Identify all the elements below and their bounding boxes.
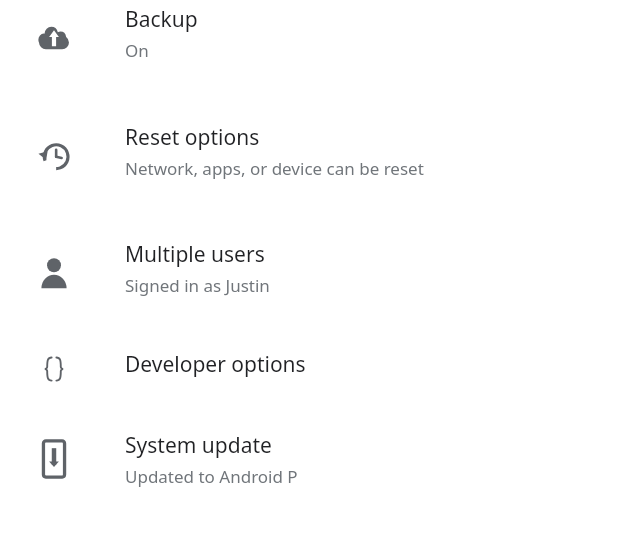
other: Developer options [37,352,71,386]
staticText: On [125,39,149,62]
other: Reset options [36,138,72,174]
button[interactable]: Multiple users [0,235,642,340]
staticText: Updated to Android P [125,465,298,488]
staticText: Developer options [125,350,306,379]
button[interactable]: Backup [0,0,642,118]
button[interactable]: System update [0,427,642,558]
other: Multiple users [37,255,71,289]
staticText: Backup [125,5,198,34]
staticText: Multiple users [125,240,265,269]
button[interactable]: Reset options [0,118,642,235]
other: System update [32,437,76,481]
staticText: Network, apps, or device can be reset [125,157,424,180]
button[interactable]: Developer options [0,340,642,427]
staticText: Reset options [125,123,260,152]
staticText: System update [125,431,272,460]
other: Backup [37,20,71,54]
staticText: Signed in as Justin [125,274,270,297]
